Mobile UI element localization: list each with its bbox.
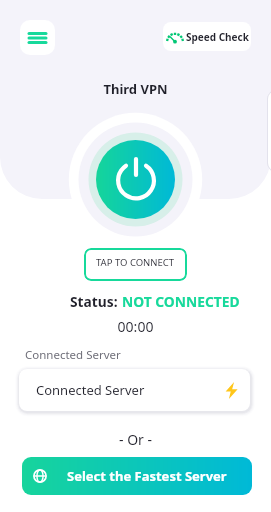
- staticText: NOT CONNECTED: [122, 292, 240, 311]
- staticText: Select the Fastest Server: [67, 467, 227, 485]
- button[interactable]: Connected Server: [19, 369, 250, 411]
- button[interactable]: TAP TO CONNECT: [84, 248, 187, 281]
- staticText: Status:: [70, 292, 122, 311]
- staticText: Connected Server: [36, 381, 145, 399]
- staticText: Speed Check: [186, 30, 249, 44]
- button[interactable]: Menu: [20, 20, 55, 55]
- button[interactable]: Select the Fastest Server: [22, 457, 252, 495]
- staticText: 00:00: [0, 317, 271, 336]
- button[interactable]: Connect: [96, 140, 175, 219]
- staticText: - Or -: [0, 430, 271, 449]
- staticText: Third VPN: [0, 80, 271, 98]
- button[interactable]: Speed Check: [163, 22, 251, 51]
- staticText: TAP TO CONNECT: [96, 256, 175, 269]
- staticText: Connected Server: [25, 347, 121, 363]
